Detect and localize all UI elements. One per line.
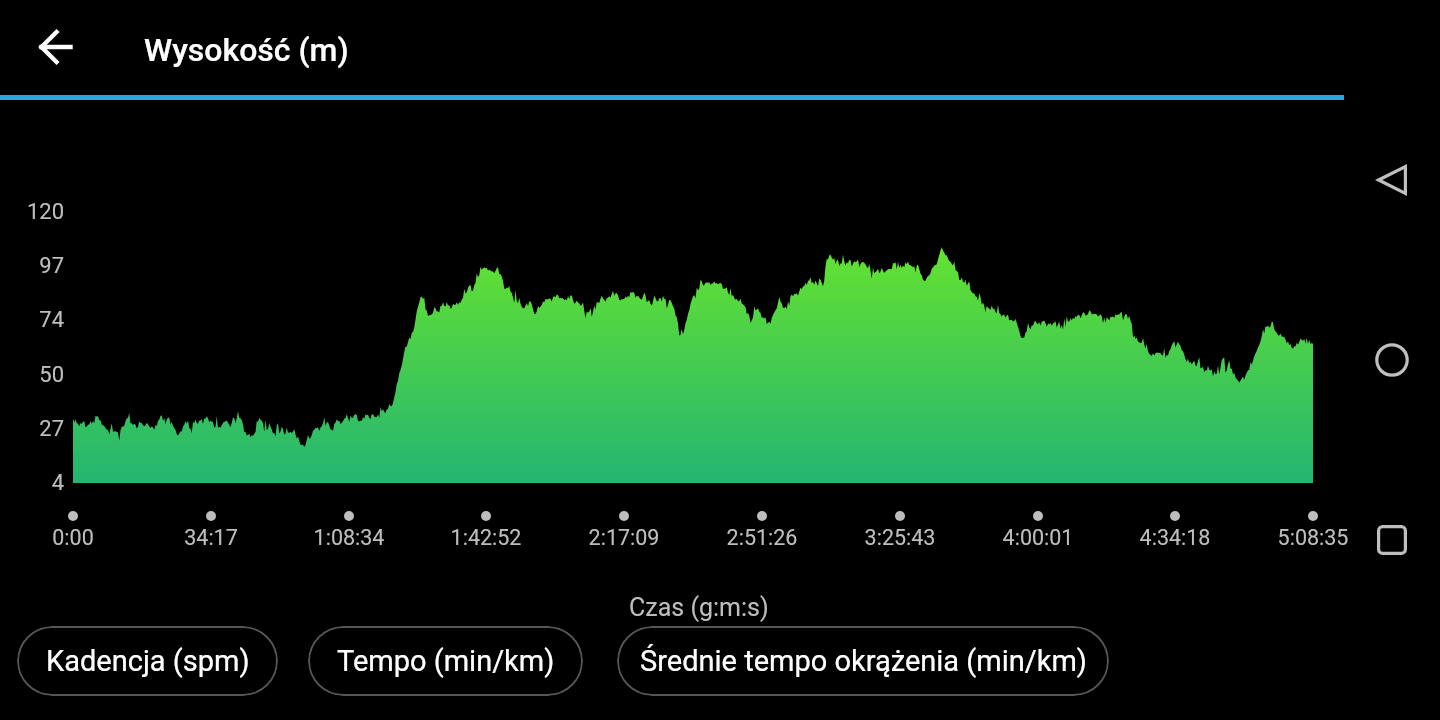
button[interactable]: Home <box>1368 336 1416 384</box>
staticText: 5:08:35 <box>1243 525 1383 550</box>
button[interactable]: Recent apps <box>1368 516 1416 564</box>
staticText: 2:51:26 <box>692 525 832 550</box>
staticText: 74 <box>0 307 64 333</box>
staticText: Kadencja (spm) <box>46 644 250 678</box>
staticText: 4 <box>0 470 64 496</box>
staticText: 4:00:01 <box>968 525 1108 550</box>
button[interactable]: Średnie tempo okrążenia (min/km) <box>617 626 1109 696</box>
staticText: Tempo (min/km) <box>337 644 555 678</box>
staticText: 3:25:43 <box>830 525 970 550</box>
button[interactable]: Back <box>24 15 88 79</box>
staticText: Wysokość (m) <box>144 31 349 69</box>
button[interactable]: Tempo (min/km) <box>308 626 583 696</box>
staticText: 27 <box>0 416 64 442</box>
staticText: Średnie tempo okrążenia (min/km) <box>640 644 1087 678</box>
staticText: 50 <box>0 362 64 388</box>
button[interactable]: Back <box>1368 156 1416 204</box>
staticText: 0:00 <box>3 525 143 550</box>
staticText: Czas (g:m:s) <box>629 593 769 622</box>
staticText: 97 <box>0 253 64 279</box>
staticText: 34:17 <box>141 525 281 550</box>
staticText: 120 <box>0 199 64 225</box>
staticText: 1:42:52 <box>416 525 556 550</box>
staticText: 1:08:34 <box>279 525 419 550</box>
button[interactable]: Kadencja (spm) <box>17 626 278 696</box>
staticText: 4:34:18 <box>1105 525 1245 550</box>
staticText: 2:17:09 <box>554 525 694 550</box>
